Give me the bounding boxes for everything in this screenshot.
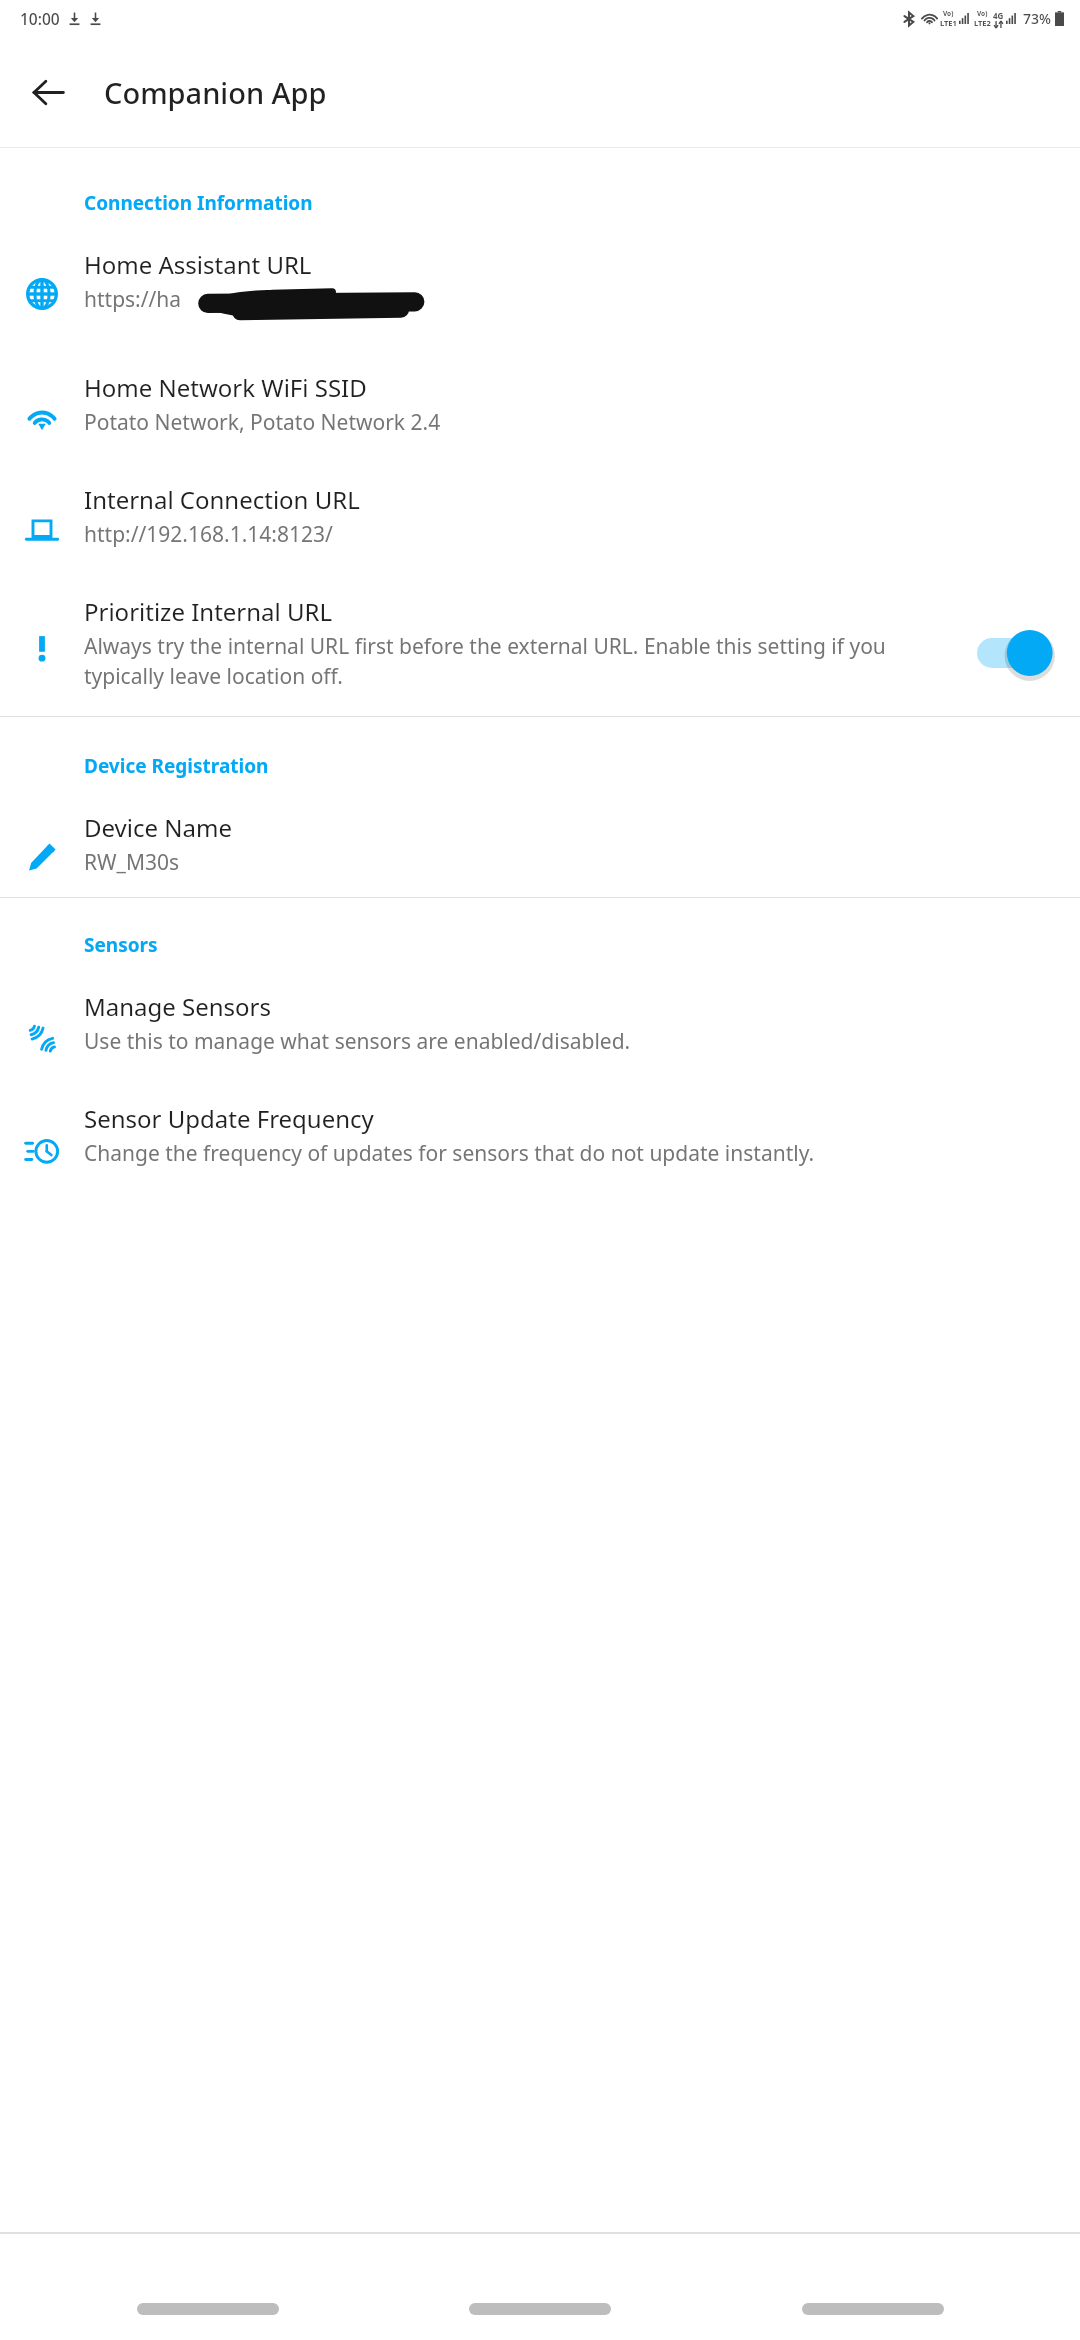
staticText: LTE1 (940, 18, 957, 28)
staticText: Vo) (977, 9, 988, 18)
staticText: Home Network WiFi SSID (84, 371, 367, 404)
staticText: Potato Network, Potato Network 2.4 (84, 408, 441, 437)
button[interactable]: Internal Connection URL (0, 461, 1080, 573)
staticText: Internal Connection URL (84, 483, 360, 516)
staticText: Vo) (943, 9, 954, 18)
staticText: Home Assistant URL (84, 248, 312, 281)
staticText: RW_M30s (84, 848, 180, 877)
staticText: LTE2 (974, 18, 991, 28)
staticText: Companion App (104, 73, 327, 112)
staticText: https://ha (84, 285, 182, 314)
staticText: Use this to manage what sensors are enab… (84, 1027, 631, 1056)
staticText: 10:00 (20, 8, 60, 29)
button[interactable]: Home Assistant URL (0, 226, 1080, 349)
staticText: Always try the internal URL first before… (84, 632, 938, 690)
staticText: Device Name (84, 811, 232, 844)
staticText: Sensors (84, 932, 158, 958)
button[interactable]: Home Network WiFi SSID (0, 349, 1080, 461)
button[interactable]: Manage Sensors (0, 968, 1080, 1080)
button[interactable]: Prioritize Internal URL (0, 573, 1080, 716)
button[interactable]: Device Name (0, 789, 1080, 897)
staticText: Change the frequency of updates for sens… (84, 1139, 815, 1168)
staticText: Manage Sensors (84, 990, 272, 1023)
button[interactable]: Back (14, 58, 82, 126)
staticText: http://192.168.1.14:8123/ (84, 520, 333, 549)
button[interactable]: Sensor Update Frequency (0, 1080, 1080, 1190)
staticText: 73% (1023, 9, 1051, 28)
button[interactable]: Navigation key (83, 2278, 333, 2340)
staticText: Prioritize Internal URL (84, 595, 333, 628)
button[interactable]: Navigation key (415, 2278, 665, 2340)
button[interactable]: Prioritize Internal URL toggle (969, 627, 1061, 679)
staticText: 4G (993, 10, 1004, 21)
staticText: Device Registration (84, 753, 269, 779)
button[interactable]: Navigation key (748, 2278, 998, 2340)
staticText: Sensor Update Frequency (84, 1102, 374, 1135)
staticText: Connection Information (84, 190, 313, 216)
